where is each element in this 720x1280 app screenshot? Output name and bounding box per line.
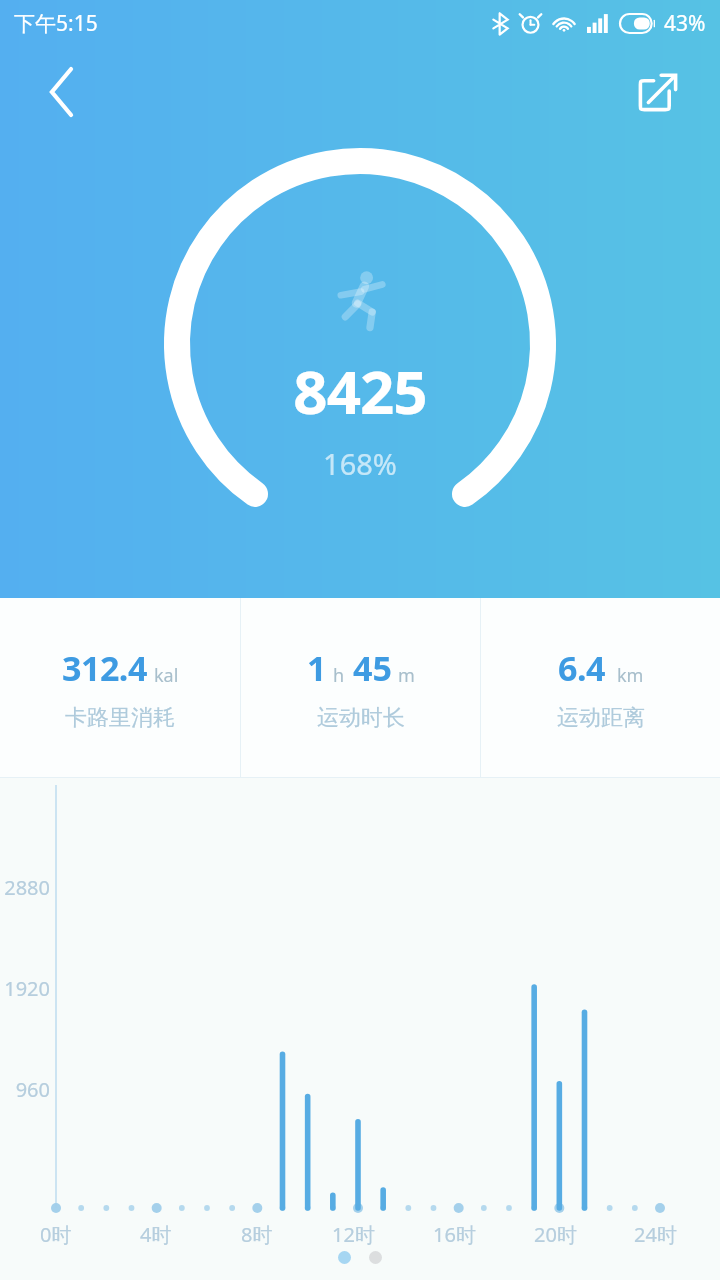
staticText: 8时 [241,1221,273,1248]
staticText: 20时 [534,1221,577,1248]
staticText: 6.4 [558,645,605,691]
staticText: m [398,663,415,688]
staticText: 卡路里消耗 [65,704,175,732]
staticText: 下午5:15 [14,9,98,38]
staticText: 16时 [433,1221,476,1248]
staticText: km [617,663,644,688]
staticText: 312.4 [62,645,147,691]
button[interactable]: 312.4 [0,598,240,778]
staticText: 8425 [293,350,427,432]
staticText: 960 [15,1076,50,1103]
staticText: 0时 [40,1221,72,1248]
staticText: 运动时长 [317,704,405,732]
staticText: 4时 [140,1221,172,1248]
staticText: 1920 [4,975,50,1002]
button[interactable]: Share [626,60,690,124]
staticText: 运动距离 [557,704,645,732]
staticText: 12时 [332,1221,375,1248]
button[interactable]: Back [30,61,92,123]
button[interactable] [338,1251,351,1264]
staticText: 168% [323,444,397,483]
button[interactable]: 6.4 [481,598,720,778]
staticText: 45 [353,645,392,691]
staticText: h [333,663,345,688]
button[interactable] [369,1251,382,1264]
staticText: 2880 [4,874,50,901]
staticText: 1 [307,645,327,691]
button[interactable]: 1 [241,598,480,778]
staticText: 24时 [634,1221,677,1248]
staticText: 43% [664,9,706,38]
staticText: kal [154,663,179,688]
